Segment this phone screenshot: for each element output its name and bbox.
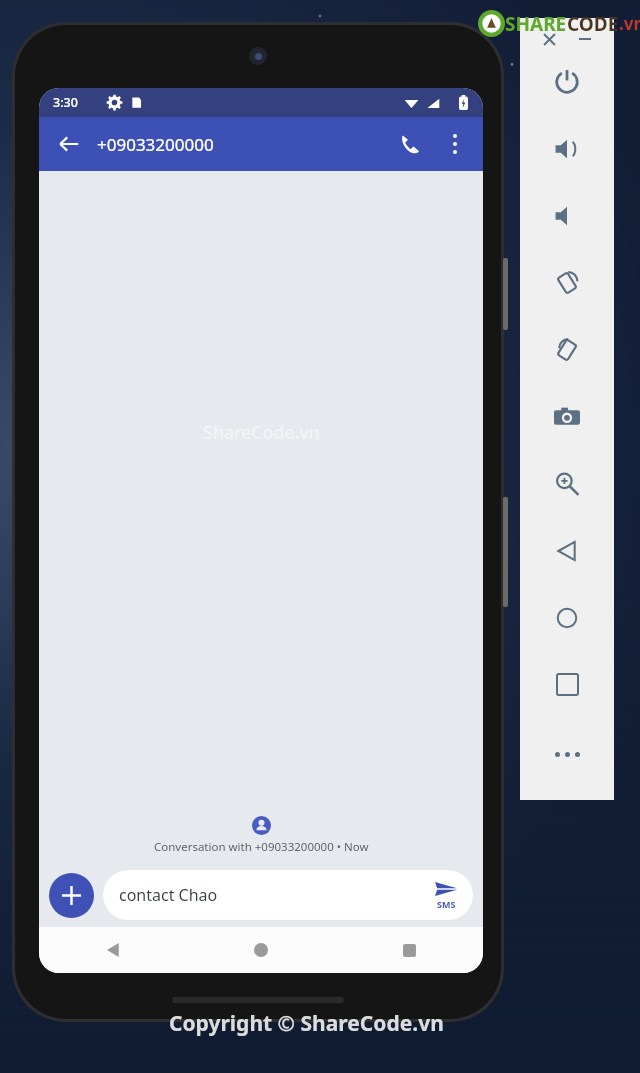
- button[interactable]: Overview: [520, 651, 614, 718]
- staticText: .vn: [619, 12, 640, 35]
- button[interactable]: Back: [39, 927, 187, 973]
- button[interactable]: Home: [187, 927, 335, 973]
- button[interactable]: Volume up: [520, 115, 614, 182]
- staticText: ShareCode.vn: [203, 420, 320, 445]
- button[interactable]: contact Chao: [103, 870, 473, 920]
- button[interactable]: Home: [520, 584, 614, 651]
- staticText: Conversation with +09033200000 • Now: [154, 839, 369, 855]
- staticText: SHARE: [505, 11, 567, 37]
- button[interactable]: Add attachment: [49, 873, 94, 918]
- button[interactable]: Send SMS: [419, 870, 473, 920]
- button[interactable]: Minimize: [576, 30, 594, 48]
- staticText: CODE: [567, 11, 619, 37]
- button[interactable]: More options: [433, 122, 477, 166]
- button[interactable]: Volume down: [520, 182, 614, 249]
- button[interactable]: Recents: [335, 927, 483, 973]
- button[interactable]: More: [520, 718, 614, 790]
- staticText: SMS: [437, 898, 456, 910]
- button[interactable]: Zoom: [520, 450, 614, 517]
- button[interactable]: Power: [520, 48, 614, 115]
- button[interactable]: Rotate left: [520, 249, 614, 316]
- button[interactable]: Rotate right: [520, 316, 614, 383]
- button[interactable]: Screenshot: [520, 383, 614, 450]
- button[interactable]: Back: [45, 120, 93, 168]
- staticText: +09033200000: [97, 133, 387, 156]
- button[interactable]: Close: [540, 30, 558, 48]
- staticText: 3:30: [53, 94, 78, 111]
- staticText: Copyright © ShareCode.vn: [169, 1009, 444, 1038]
- staticText: contact Chao: [119, 884, 419, 906]
- button[interactable]: Call: [387, 121, 433, 167]
- button[interactable]: Back: [520, 517, 614, 584]
